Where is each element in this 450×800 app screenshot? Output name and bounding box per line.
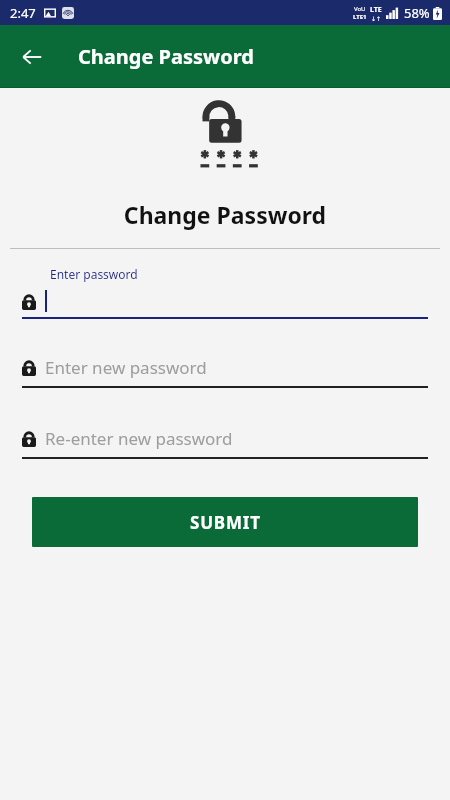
staticText: Enter password [50,266,138,282]
staticText: VoU [354,5,366,13]
staticText: 58% [404,4,430,22]
button[interactable]: Re-enter new password [22,427,428,450]
staticText: Change Password [0,199,450,230]
button[interactable]: Enter new password [22,356,428,379]
staticText: ↓↑ [371,15,382,22]
button[interactable]: Back [12,37,52,77]
staticText: SUBMIT [190,511,261,534]
staticText: 2:47 [10,4,36,22]
staticText: Enter new password [45,356,207,379]
button[interactable] [22,290,428,312]
button[interactable]: SUBMIT [32,497,418,547]
staticText: LTE [370,5,382,15]
staticText: LTE1 [353,13,367,21]
staticText: Change Password [78,43,254,70]
staticText: Re-enter new password [45,427,233,450]
